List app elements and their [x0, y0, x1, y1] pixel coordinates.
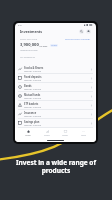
button[interactable]: ETF baskets	[15, 101, 96, 109]
staticText: .00 GBP	[39, 45, 48, 48]
staticText: 9:41	[18, 24, 22, 27]
staticText: Investments	[20, 29, 43, 34]
staticText: Low risk · 5.2% p.a	[24, 106, 42, 109]
staticText: ETF baskets	[24, 102, 39, 105]
button[interactable]: Savings plan	[15, 119, 96, 127]
button[interactable]: Invest	[42, 129, 52, 138]
staticText: Low risk · 5.2% p.a	[24, 97, 42, 100]
button[interactable]: Wallet	[60, 129, 70, 138]
staticText: Home	[25, 134, 31, 137]
staticText: Insurance	[24, 111, 37, 114]
staticText: ALL PRODUCTS	[20, 56, 35, 59]
staticText: Fixed deposits	[24, 75, 42, 78]
button[interactable]: Notifications	[86, 29, 91, 34]
staticText: Low risk · 5.2% p.a	[24, 124, 42, 127]
button[interactable]: Home	[23, 129, 33, 138]
button[interactable]: Search	[79, 29, 84, 34]
button[interactable]: Mutual funds	[15, 92, 96, 100]
staticText: Invest in a wide range of products	[0, 158, 112, 175]
staticText: Low risk · 5.2% p.a	[24, 115, 42, 118]
staticText: Low risk · 5.2% p.a	[24, 70, 42, 73]
staticText: Mutual funds	[24, 93, 41, 96]
staticText: Wallet	[62, 134, 68, 137]
button[interactable]: TRANSACTION HISTORY	[65, 38, 91, 41]
staticText: +2.4%	[51, 44, 57, 47]
button[interactable]: More	[79, 129, 88, 138]
button[interactable]: Stocks & Shares	[15, 65, 96, 73]
staticText: Savings plan	[24, 120, 40, 123]
staticText: TRANSACTION HISTORY	[65, 38, 91, 41]
button[interactable]: Insurance	[15, 110, 96, 118]
staticText: Low risk · 5.2% p.a	[24, 88, 42, 91]
staticText: Low risk · 5.2% p.a	[24, 79, 42, 82]
staticText: TOTAL BALANCE	[20, 38, 38, 41]
button[interactable]: +2.4%	[50, 44, 58, 47]
button[interactable]: Fixed deposits	[15, 74, 96, 82]
button[interactable]: Bonds	[15, 83, 96, 91]
staticText: Bonds	[24, 84, 32, 87]
staticText: Invest	[44, 134, 50, 137]
staticText: Stocks & Shares	[24, 66, 44, 69]
staticText: Updated just now	[20, 49, 38, 52]
staticText: More	[81, 134, 86, 137]
staticText: 3,900,000	[20, 42, 39, 48]
